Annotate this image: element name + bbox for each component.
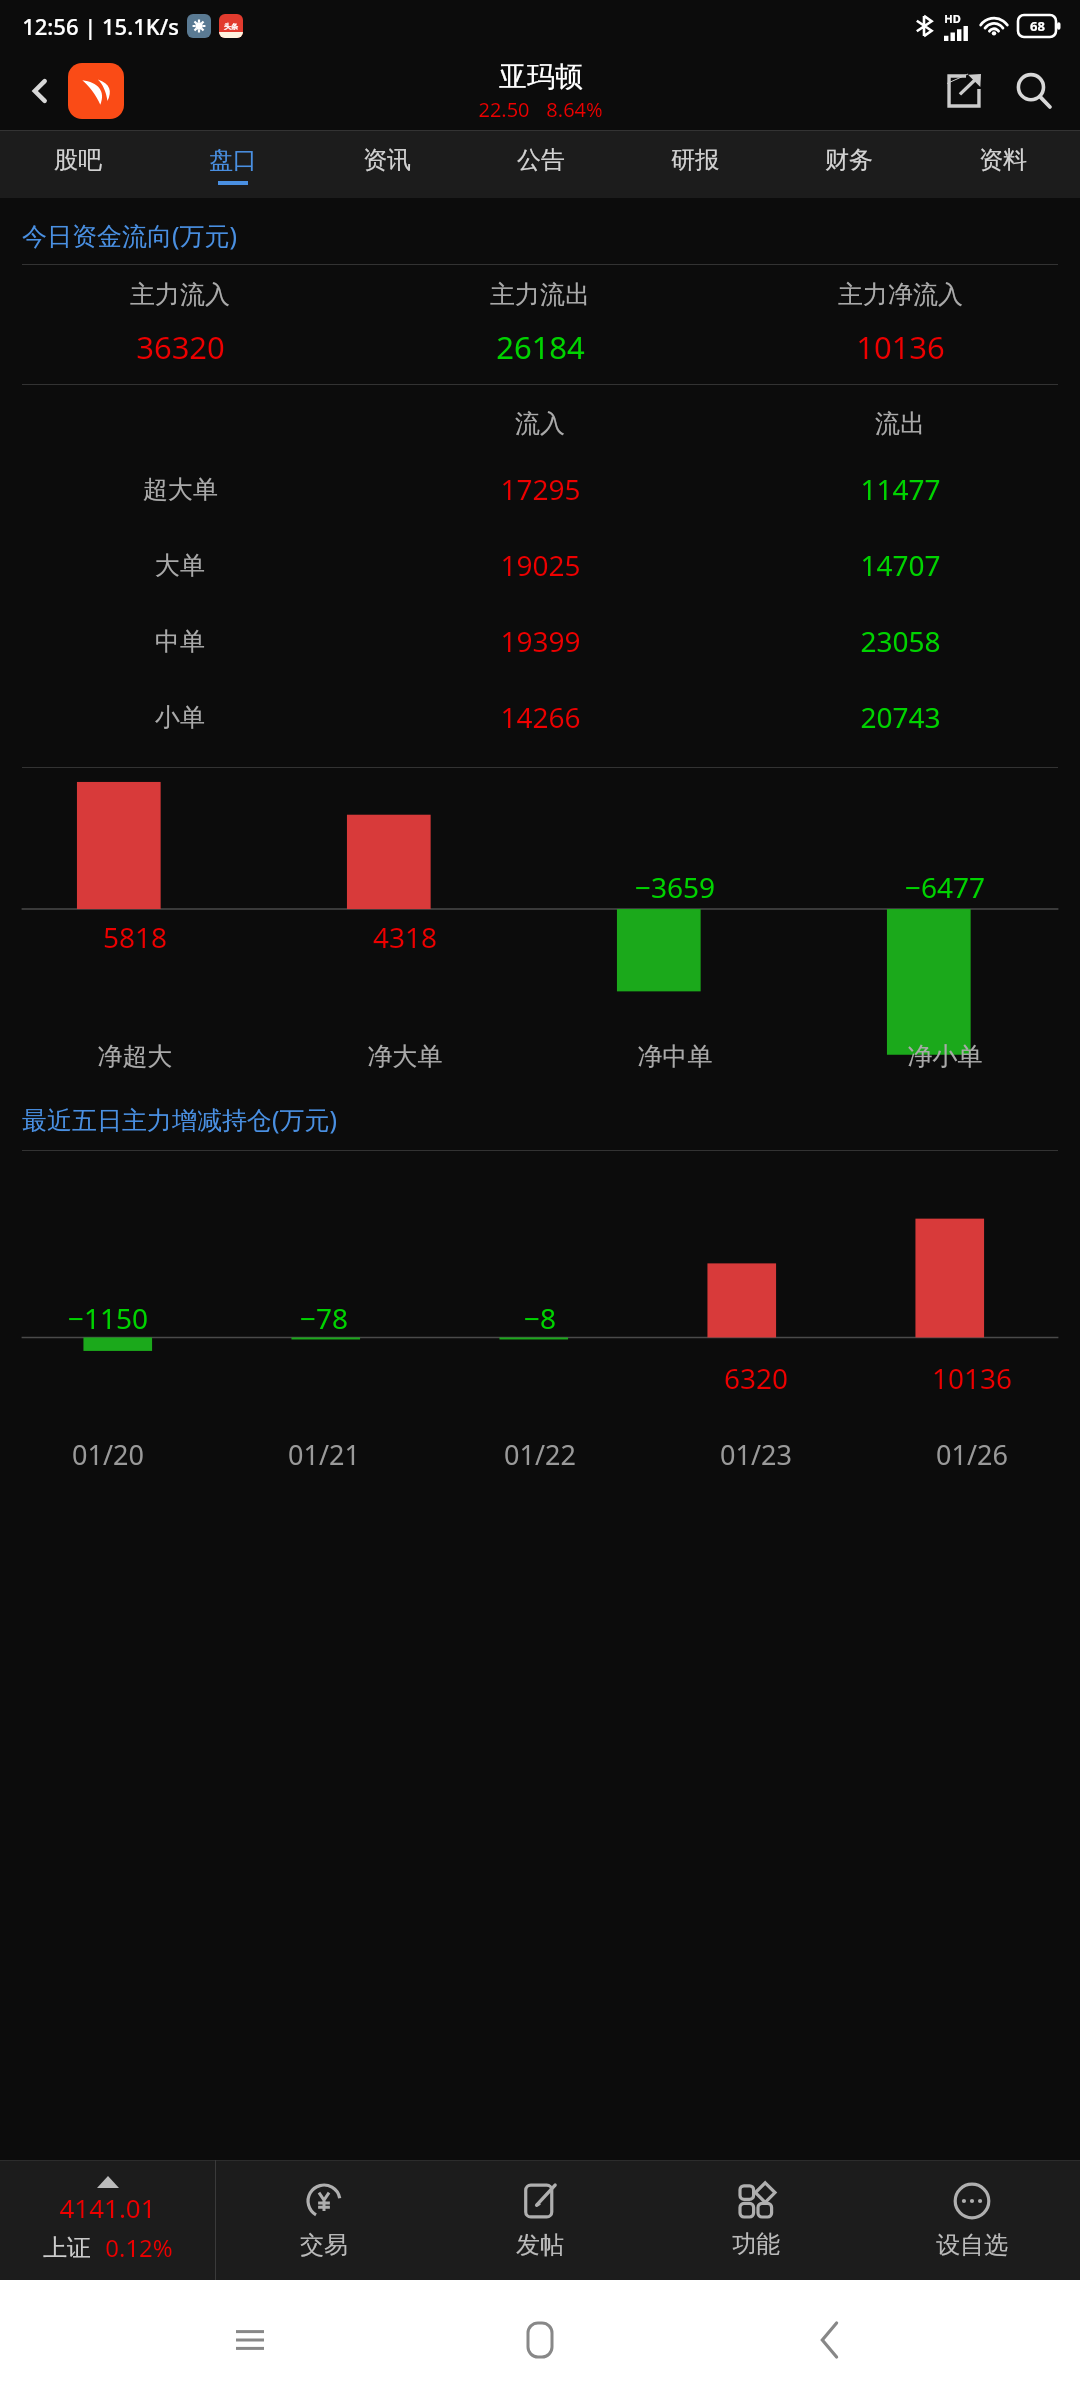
staticText: 流出 xyxy=(875,408,925,439)
staticText: 头条 xyxy=(224,22,238,31)
button[interactable]: 财务 xyxy=(772,131,926,198)
staticText: 盘口 xyxy=(209,145,257,175)
staticText: 研报 xyxy=(671,145,719,175)
button[interactable]: App logo xyxy=(68,63,124,119)
button[interactable]: 交易 xyxy=(216,2160,432,2280)
staticText: −3659 xyxy=(540,868,810,906)
staticText: 20743 xyxy=(860,698,941,736)
staticText: 11477 xyxy=(860,470,941,508)
staticText: 净超大 xyxy=(0,1041,270,1072)
button[interactable]: Search xyxy=(1002,59,1066,123)
staticText: 公告 xyxy=(517,145,565,175)
staticText: 01/23 xyxy=(648,1436,864,1473)
staticText: 36320 xyxy=(136,326,225,368)
staticText: 大单 xyxy=(155,550,205,581)
staticText: 交易 xyxy=(300,2230,348,2260)
staticText: HD xyxy=(944,11,961,26)
staticText: 主力流出 xyxy=(490,279,590,310)
staticText: 22.50 xyxy=(478,96,530,123)
staticText: 股吧 xyxy=(54,145,102,175)
staticText: 中单 xyxy=(155,626,205,657)
staticText: 最近五日主力增减持仓(万元) xyxy=(22,1102,338,1136)
button[interactable]: Home xyxy=(500,2300,580,2380)
staticText: −8 xyxy=(432,1299,648,1337)
staticText: 4318 xyxy=(270,918,540,956)
button[interactable]: Share xyxy=(932,59,996,123)
staticText: 上证 xyxy=(43,2233,91,2263)
button[interactable]: 功能 xyxy=(648,2160,864,2280)
staticText: 5818 xyxy=(0,918,270,956)
staticText: 19025 xyxy=(500,546,581,584)
staticText: 68 xyxy=(1030,17,1045,35)
staticText: −78 xyxy=(216,1299,432,1337)
staticText: 0.12% xyxy=(105,2231,173,2264)
staticText: 19399 xyxy=(500,622,581,660)
staticText: 今日资金流向(万元) xyxy=(22,218,238,252)
staticText: 净小单 xyxy=(810,1041,1080,1072)
staticText: −1150 xyxy=(0,1299,216,1337)
staticText: 8.64% xyxy=(546,96,603,123)
button[interactable]: Back xyxy=(790,2300,870,2380)
staticText: 超大单 xyxy=(143,474,218,505)
button[interactable]: 设自选 xyxy=(864,2160,1080,2280)
staticText: 净大单 xyxy=(270,1041,540,1072)
staticText: 01/22 xyxy=(432,1436,648,1473)
button[interactable]: 4141.01 xyxy=(0,2160,215,2280)
staticText: −6477 xyxy=(810,868,1080,906)
staticText: 01/21 xyxy=(216,1436,432,1473)
staticText: 资料 xyxy=(979,145,1027,175)
button[interactable]: 研报 xyxy=(618,131,772,198)
staticText: 10136 xyxy=(864,1359,1080,1397)
staticText: 17295 xyxy=(500,470,581,508)
staticText: 12:56 | 15.1K/s xyxy=(22,11,179,41)
staticText: 设自选 xyxy=(936,2230,1008,2260)
staticText: 发帖 xyxy=(516,2230,564,2260)
staticText: 净中单 xyxy=(540,1041,810,1072)
staticText: 26184 xyxy=(496,326,585,368)
staticText: 23058 xyxy=(860,622,941,660)
staticText: 财务 xyxy=(825,145,873,175)
button[interactable]: 资料 xyxy=(926,131,1080,198)
staticText: 小单 xyxy=(155,702,205,733)
button[interactable]: 股吧 xyxy=(0,131,155,198)
staticText: 流入 xyxy=(515,408,565,439)
staticText: 01/26 xyxy=(864,1436,1080,1473)
staticText: 主力流入 xyxy=(130,279,230,310)
staticText: 14707 xyxy=(860,546,941,584)
staticText: 功能 xyxy=(732,2229,780,2259)
button[interactable]: 发帖 xyxy=(432,2160,648,2280)
staticText: 6320 xyxy=(648,1359,864,1397)
staticText: 14266 xyxy=(500,698,581,736)
button[interactable]: 公告 xyxy=(464,131,618,198)
button[interactable]: Recent apps xyxy=(210,2300,290,2380)
staticText: 01/20 xyxy=(0,1436,216,1473)
staticText: 4141.01 xyxy=(59,2190,156,2225)
staticText: 主力净流入 xyxy=(838,279,963,310)
button[interactable]: Back xyxy=(14,65,66,117)
staticText: 资讯 xyxy=(363,145,411,175)
staticText: 10136 xyxy=(856,326,945,368)
staticText: 亚玛顿 xyxy=(499,59,583,94)
button[interactable]: 资讯 xyxy=(310,131,464,198)
button[interactable]: 盘口 xyxy=(155,131,310,198)
